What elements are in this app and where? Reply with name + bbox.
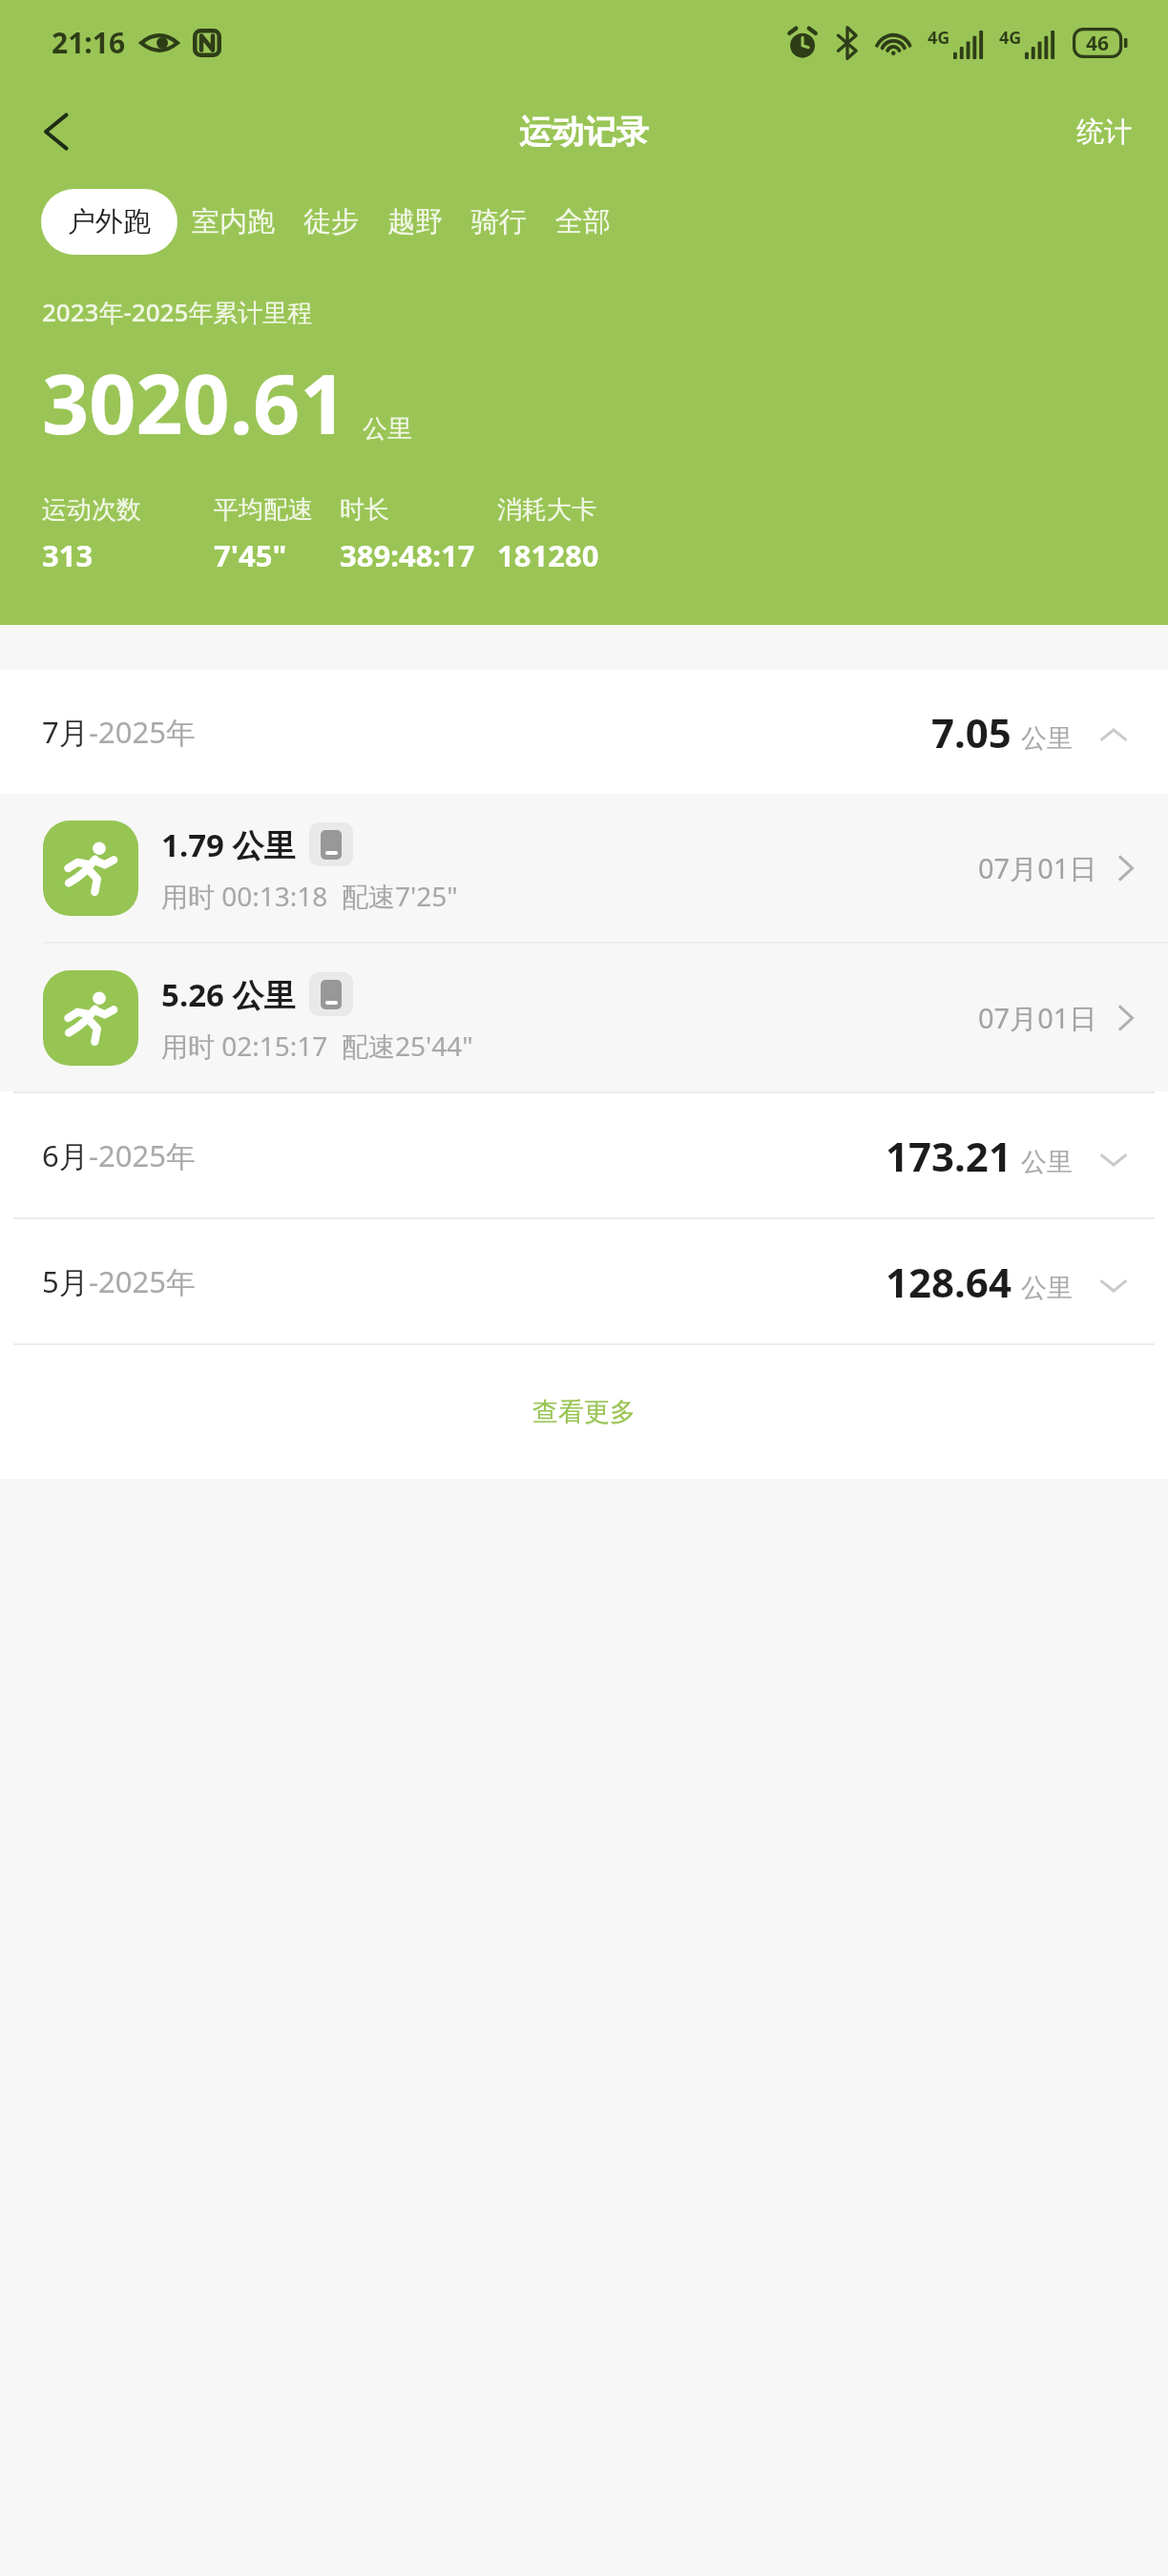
staticText: 骑行 [471, 204, 527, 239]
staticText: 户外跑 [68, 204, 151, 239]
staticText: 46 [1086, 30, 1110, 57]
staticText: 07月01日 [978, 849, 1097, 887]
button[interactable]: 全部 [541, 189, 625, 255]
staticText: 越野 [387, 204, 443, 239]
staticText: 21:16 [52, 23, 126, 62]
staticText: 公里 [1021, 1272, 1073, 1304]
other: Collapse [1090, 712, 1137, 759]
staticText: 2023年-2025年累计里程 [42, 295, 313, 329]
staticText: 平均配速 [214, 494, 313, 526]
button[interactable]: 越野 [373, 189, 457, 255]
staticText: 公里 [1021, 722, 1073, 755]
button[interactable]: 统计 [1067, 107, 1141, 157]
staticText: -2025年 [89, 1261, 196, 1301]
staticText: -2025年 [89, 712, 196, 752]
button[interactable]: Back [21, 95, 94, 168]
staticText: 用时 02:15:17 配速25'44" [161, 1028, 473, 1064]
staticText: 6月 [42, 1135, 89, 1175]
staticText: -2025年 [89, 1135, 196, 1175]
staticText: 7'45" [214, 535, 287, 575]
staticText: 389:48:17 [340, 535, 475, 575]
staticText: 时长 [340, 494, 389, 526]
button[interactable]: 查看更多 [0, 1345, 1168, 1479]
staticText: 07月01日 [978, 999, 1097, 1037]
staticText: 消耗大卡 [497, 494, 596, 526]
button[interactable]: 户外跑 [41, 189, 177, 255]
other: Expand [1090, 1261, 1137, 1309]
staticText: 7月 [42, 712, 89, 752]
staticText: 128.64 [886, 1255, 1012, 1309]
staticText: 3020.61 [42, 346, 347, 458]
staticText: 全部 [555, 204, 611, 239]
staticText: 用时 00:13:18 配速7'25" [161, 878, 458, 914]
staticText: 运动次数 [42, 494, 141, 526]
staticText: 徒步 [303, 204, 359, 239]
staticText: 室内跑 [192, 204, 275, 239]
staticText: 173.21 [886, 1129, 1012, 1183]
staticText: 7.05 [931, 705, 1012, 759]
staticText: 公里 [363, 413, 412, 445]
staticText: 运动记录 [519, 112, 649, 153]
staticText: 5.26 公里 [161, 973, 296, 1016]
staticText: 公里 [1021, 1146, 1073, 1178]
staticText: 4G [928, 26, 950, 50]
button[interactable]: 1.79 公里 [0, 794, 1168, 942]
staticText: 查看更多 [532, 1396, 636, 1428]
staticText: 5月 [42, 1261, 89, 1301]
button[interactable]: 骑行 [457, 189, 541, 255]
staticText: 统计 [1076, 114, 1132, 150]
button[interactable]: 5月 [0, 1219, 1168, 1343]
button[interactable]: 室内跑 [177, 189, 289, 255]
button[interactable]: 6月 [0, 1093, 1168, 1217]
staticText: 181280 [497, 535, 599, 575]
staticText: 313 [42, 535, 94, 575]
button[interactable]: 5.26 公里 [0, 944, 1168, 1091]
button[interactable]: 7月 [0, 670, 1168, 794]
staticText: 4G [999, 26, 1022, 50]
other: Expand [1090, 1135, 1137, 1183]
button[interactable]: 徒步 [289, 189, 373, 255]
staticText: 1.79 公里 [161, 823, 296, 866]
